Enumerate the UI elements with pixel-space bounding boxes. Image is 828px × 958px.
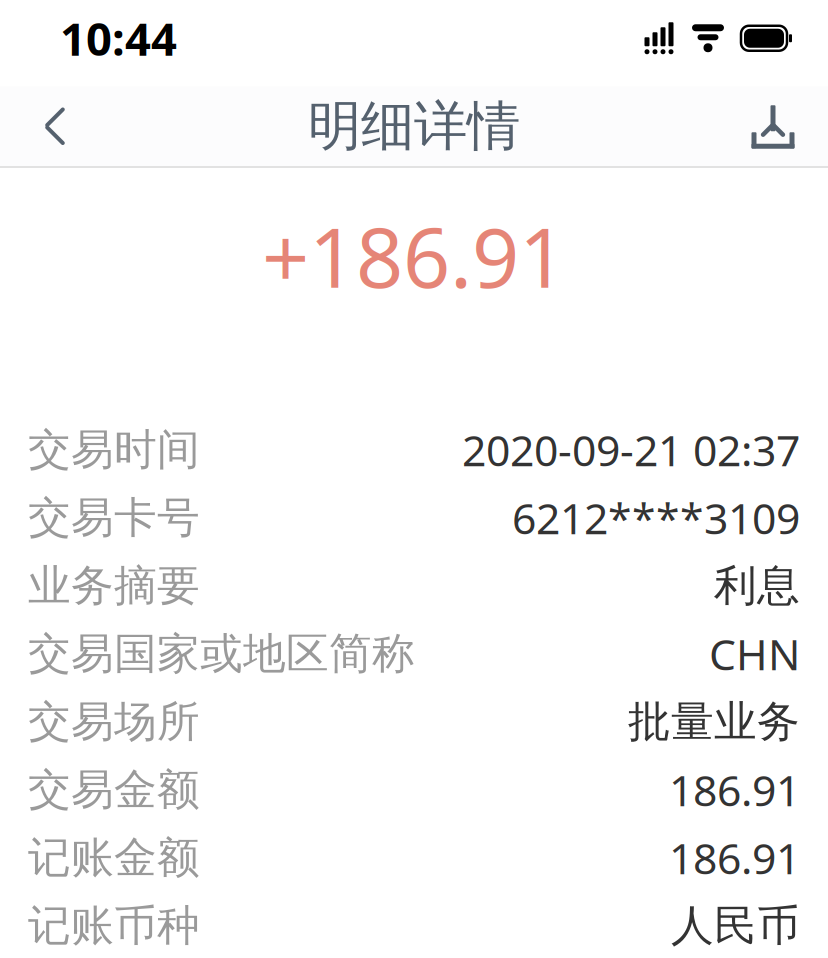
staticText: 记账金额 [28,831,200,884]
staticText: 交易场所 [28,695,200,748]
staticText: 交易卡号 [28,491,200,544]
button[interactable]: 返回 [0,86,110,166]
staticText: 186.91 [669,829,800,886]
staticText: 批量业务 [628,695,800,748]
staticText: 10:44 [60,8,177,68]
staticText: CHN [709,625,800,682]
staticText: 交易时间 [28,423,200,476]
staticText: 记账币种 [28,899,200,952]
staticText: 2020-09-21 02:37 [462,421,800,478]
staticText: 6212****3109 [512,489,800,546]
button[interactable]: 下载 [718,86,828,166]
staticText: 交易国家或地区简称 [28,627,415,680]
staticText: 利息 [714,559,800,612]
staticText: 186.91 [669,761,800,818]
staticText: 交易金额 [28,763,200,816]
staticText: 人民币 [671,899,800,952]
staticText: +186.91 [262,201,566,311]
staticText: 明细详情 [308,93,520,159]
staticText: 业务摘要 [28,559,200,612]
